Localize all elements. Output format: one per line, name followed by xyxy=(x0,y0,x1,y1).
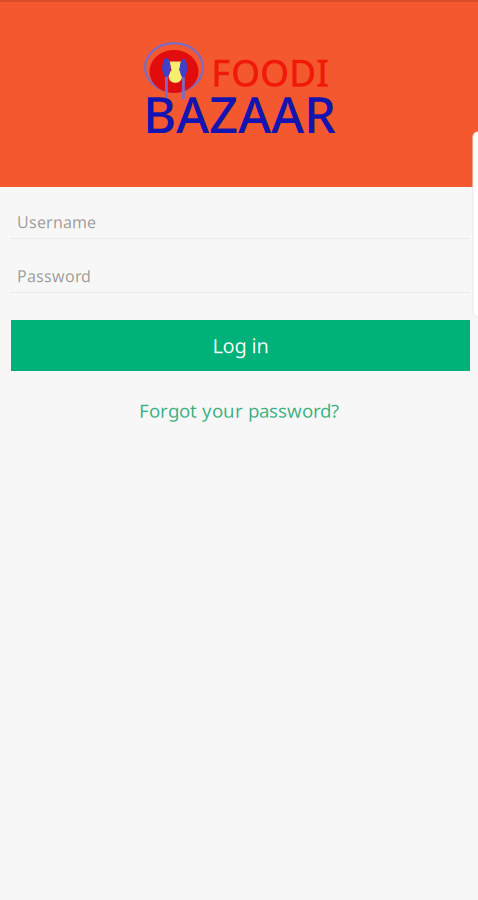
button[interactable]: Forgot your password? xyxy=(0,398,478,423)
button[interactable]: Log in xyxy=(11,320,470,371)
button[interactable]: Password xyxy=(0,267,478,293)
staticText: BAZAAR xyxy=(143,80,336,147)
staticText: Username xyxy=(17,211,96,233)
staticText: FOODI xyxy=(211,47,329,97)
staticText: Forgot your password? xyxy=(139,398,339,423)
staticText: Password xyxy=(17,265,91,287)
staticText: Log in xyxy=(212,332,268,359)
button[interactable]: Username xyxy=(0,213,478,239)
